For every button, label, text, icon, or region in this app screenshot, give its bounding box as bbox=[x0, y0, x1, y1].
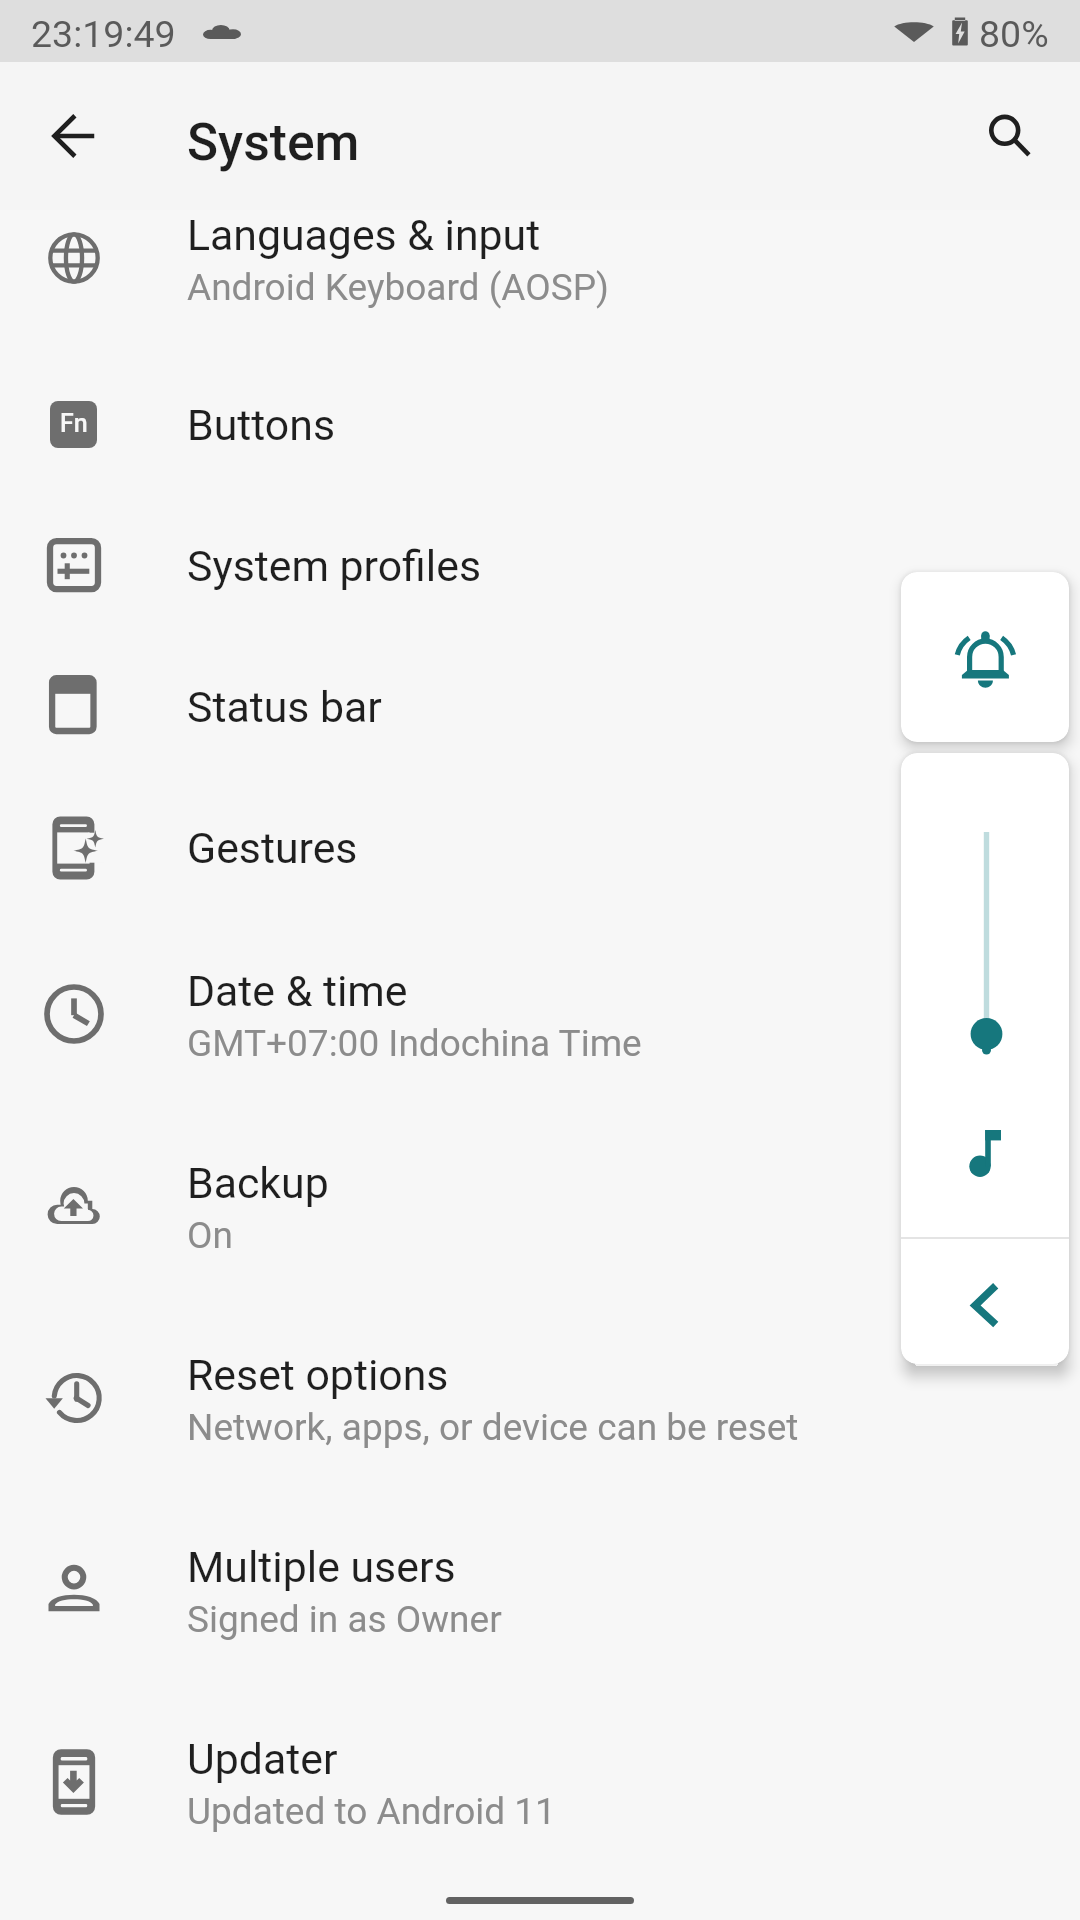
staticText: Updater bbox=[187, 1734, 338, 1784]
staticText: Backup bbox=[187, 1158, 329, 1208]
button[interactable]: Languages & input bbox=[0, 167, 1080, 359]
staticText: Reset options bbox=[187, 1350, 449, 1400]
button[interactable]: Fn bbox=[0, 359, 1080, 500]
staticText: System bbox=[187, 112, 360, 172]
button[interactable]: Status bar bbox=[0, 641, 1080, 782]
staticText: Date & time bbox=[187, 966, 408, 1016]
button[interactable]: System profiles bbox=[0, 500, 1080, 641]
staticText: Gestures bbox=[187, 823, 358, 873]
staticText: Updated to Android 11 bbox=[187, 1790, 556, 1833]
staticText: 23:19:49 bbox=[31, 12, 176, 56]
staticText: Network, apps, or device can be reset bbox=[187, 1406, 799, 1449]
button[interactable]: Multiple users bbox=[0, 1499, 1080, 1691]
staticText: Signed in as Owner bbox=[187, 1598, 502, 1641]
button[interactable]: Ringer mode bbox=[901, 572, 1069, 742]
button[interactable]: Media volume bbox=[901, 753, 1069, 1237]
staticText: Buttons bbox=[187, 400, 335, 450]
staticText: Status bar bbox=[187, 682, 382, 732]
button[interactable]: Updater bbox=[0, 1691, 1080, 1883]
button[interactable]: Search bbox=[968, 94, 1052, 178]
button[interactable]: Date & time bbox=[0, 923, 1080, 1115]
staticText: Languages & input bbox=[187, 210, 541, 260]
button[interactable]: Back bbox=[32, 94, 116, 178]
staticText: Android Keyboard (AOSP) bbox=[187, 266, 609, 309]
staticText: GMT+07:00 Indochina Time bbox=[187, 1022, 642, 1065]
button[interactable]: Expand volume panel bbox=[901, 1239, 1069, 1364]
staticText: 80% bbox=[979, 12, 1049, 56]
button[interactable]: Reset options bbox=[0, 1307, 1080, 1499]
staticText: On bbox=[187, 1214, 233, 1257]
staticText: Multiple users bbox=[187, 1542, 456, 1592]
staticText: System profiles bbox=[187, 541, 482, 591]
button[interactable]: Gestures bbox=[0, 782, 1080, 923]
staticText: Fn bbox=[60, 409, 88, 438]
button[interactable]: Backup bbox=[0, 1115, 1080, 1307]
